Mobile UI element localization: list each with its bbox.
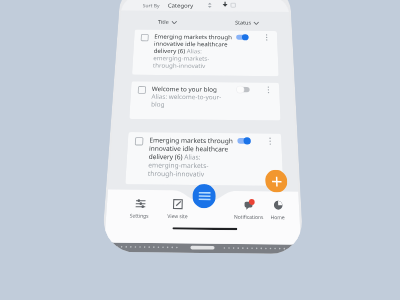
button[interactable]: Settings [121,198,158,219]
button[interactable]: Title [158,18,177,26]
button[interactable]: Menu [192,184,216,208]
staticText: Title [158,18,169,25]
button[interactable]: Status [235,18,259,27]
button[interactable]: Notifications [231,200,267,220]
button[interactable]: View site [159,199,196,219]
staticText: View site [167,212,188,219]
staticText: Emerging markets through innovative idle… [153,32,239,70]
staticText: Welcome to your blog Alias: welcome-to-y… [151,84,239,109]
staticText: Emerging markets through innovative idle… [148,135,240,179]
staticText: Status [235,19,251,26]
button[interactable]: Add [265,170,288,193]
button[interactable]: Published [236,34,249,40]
button[interactable]: Emerging markets through innovative idle… [132,29,279,76]
button[interactable]: Draft [237,86,250,93]
staticText: Home [270,213,286,220]
button[interactable]: More options [268,136,272,146]
staticText: Category [168,1,194,9]
button[interactable]: Download [222,1,228,7]
staticText: Notifications [234,213,264,220]
button[interactable]: Copy [230,2,237,8]
button[interactable]: Welcome to your blog Alias: welcome-to-y… [129,81,281,121]
button[interactable]: More options [266,85,270,94]
staticText: Sort By [143,2,161,8]
button[interactable]: Home [259,200,297,220]
button[interactable]: Emerging markets through innovative idle… [125,132,283,186]
button[interactable]: More options [265,33,269,41]
staticText: Settings [130,212,149,219]
button[interactable]: Published [237,137,251,144]
